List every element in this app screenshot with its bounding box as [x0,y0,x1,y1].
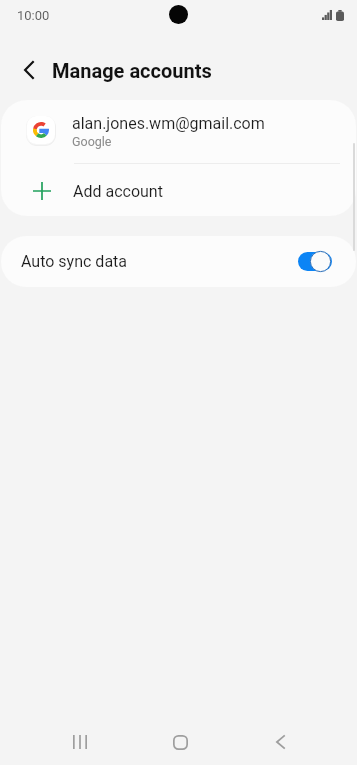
staticText: Auto sync data [21,252,128,271]
button[interactable]: Back [7,48,51,92]
staticText: alan.jones.wm@gmail.com [72,114,265,133]
button[interactable]: Add account [1,164,356,216]
staticText: Manage accounts [52,59,212,82]
staticText: Google [72,134,112,149]
staticText: 10:00 [17,8,50,23]
staticText: Add account [73,182,163,201]
button[interactable]: Back [256,719,304,765]
button[interactable]: Auto sync data [298,250,332,274]
button[interactable]: Recent apps [56,719,104,765]
button[interactable]: alan.jones.wm@gmail.com [1,100,356,163]
button[interactable]: Home [156,719,204,765]
button[interactable]: Auto sync data [1,236,356,287]
